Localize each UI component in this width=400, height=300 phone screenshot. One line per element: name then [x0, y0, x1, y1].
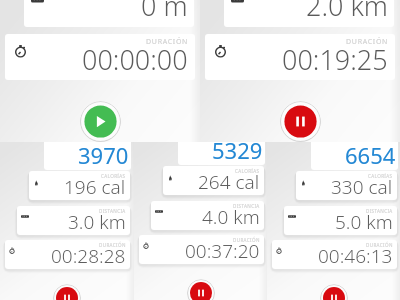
staticText: 00:37:20 — [185, 238, 260, 264]
button[interactable]: Pause workout — [53, 284, 81, 300]
staticText: 5329 — [212, 142, 263, 165]
staticText: DURACIÓN — [99, 242, 126, 248]
staticText: 196 cal — [64, 174, 126, 200]
staticText: 00:00:00 — [82, 41, 188, 78]
staticText: 264 cal — [198, 169, 260, 195]
staticText: 330 cal — [331, 174, 393, 200]
staticText: 00:46:13 — [318, 243, 393, 269]
staticText: DISTANCIA — [233, 203, 260, 209]
staticText: 00:19:25 — [282, 41, 388, 78]
staticText: 2.0 km — [306, 0, 388, 24]
staticText: 6654 — [345, 142, 396, 170]
staticText: CALORÍAS — [101, 173, 126, 179]
staticText: 5.0 km — [335, 209, 393, 235]
staticText: CALORÍAS — [368, 173, 393, 179]
staticText: DURACIÓN — [346, 37, 389, 47]
staticText: DURACIÓN — [146, 37, 189, 47]
staticText: CALORÍAS — [235, 168, 260, 174]
staticText: 0 m — [141, 0, 188, 24]
button[interactable]: Pause workout — [280, 101, 321, 142]
staticText: 00:28:28 — [51, 243, 126, 269]
staticText: 3970 — [78, 142, 129, 170]
button[interactable]: Pause workout — [187, 279, 215, 300]
button[interactable]: Pause workout — [320, 284, 348, 300]
button[interactable]: Start workout — [80, 101, 121, 142]
staticText: DISTANCIA — [366, 208, 393, 214]
staticText: 3.0 km — [68, 209, 126, 235]
staticText: DURACIÓN — [233, 237, 260, 243]
staticText: 4.0 km — [202, 204, 260, 230]
staticText: DISTANCIA — [99, 208, 126, 214]
staticText: DURACIÓN — [366, 242, 393, 248]
